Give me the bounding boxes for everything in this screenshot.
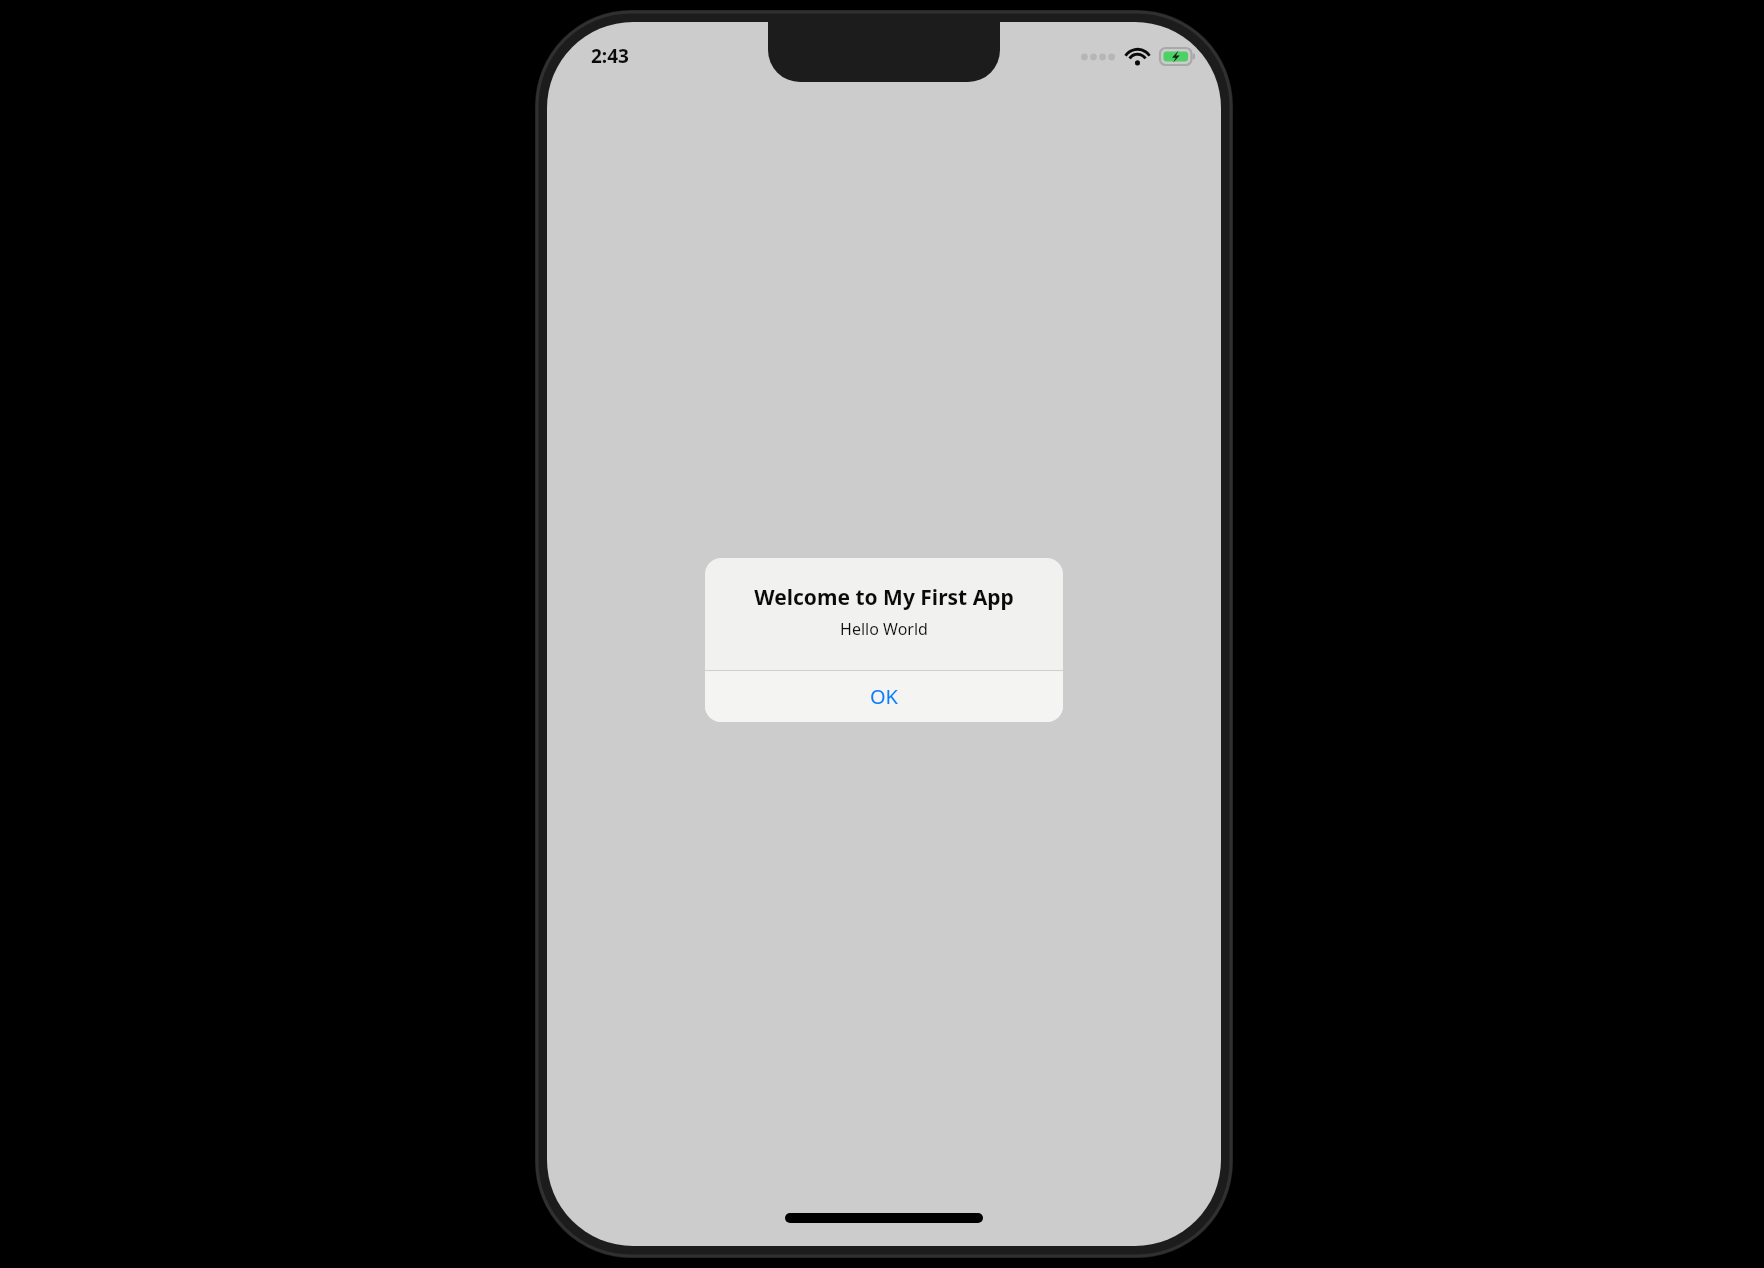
- staticText: OK: [870, 683, 898, 710]
- staticText: Welcome to My First App: [754, 583, 1014, 612]
- staticText: 2:43: [591, 43, 629, 69]
- other: Wi-Fi: [1126, 48, 1149, 65]
- other: Battery charging: [1160, 48, 1195, 65]
- button[interactable]: OK: [705, 671, 1063, 722]
- other: Cellular signal: [1081, 50, 1115, 64]
- staticText: Hello World: [840, 618, 928, 640]
